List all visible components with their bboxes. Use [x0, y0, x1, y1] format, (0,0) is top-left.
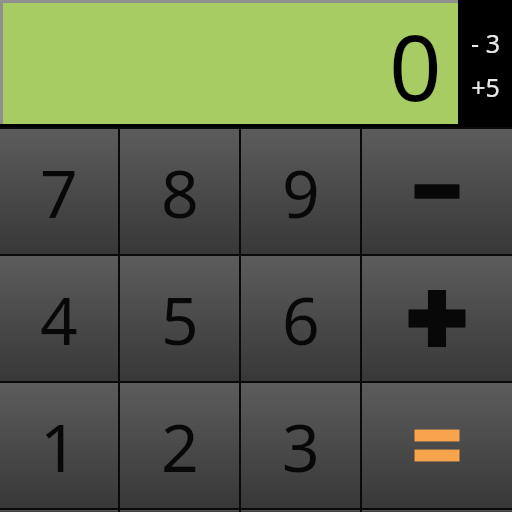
staticText: 4: [40, 274, 78, 364]
button[interactable]: 0: [3, 3, 458, 124]
staticText: 6: [282, 274, 320, 364]
button[interactable]: 4: [0, 256, 118, 381]
staticText: 0: [389, 3, 442, 118]
staticText: 9: [282, 147, 320, 237]
button[interactable]: 2: [120, 383, 239, 508]
button[interactable]: 5: [120, 256, 239, 381]
staticText: +5: [471, 70, 500, 104]
button[interactable]: [241, 510, 360, 512]
staticText: 3: [282, 401, 320, 491]
button[interactable]: 0: [0, 510, 118, 512]
staticText: 0: [40, 510, 78, 512]
button[interactable]: 8: [120, 129, 239, 254]
button[interactable]: 7: [0, 129, 118, 254]
button[interactable]: Plus: [362, 256, 512, 381]
staticText: .: [171, 510, 189, 512]
button[interactable]: Minus: [362, 129, 512, 254]
button[interactable]: [362, 510, 512, 512]
button[interactable]: - 3: [458, 0, 512, 127]
button[interactable]: 3: [241, 383, 360, 508]
button[interactable]: 9: [241, 129, 360, 254]
button[interactable]: Equals: [362, 383, 512, 508]
button[interactable]: .: [120, 510, 239, 512]
staticText: - 3: [471, 26, 500, 60]
staticText: 1: [40, 401, 78, 491]
staticText: 7: [40, 147, 78, 237]
staticText: 5: [161, 274, 199, 364]
button[interactable]: 1: [0, 383, 118, 508]
staticText: 8: [161, 147, 199, 237]
button[interactable]: 6: [241, 256, 360, 381]
staticText: 2: [161, 401, 199, 491]
